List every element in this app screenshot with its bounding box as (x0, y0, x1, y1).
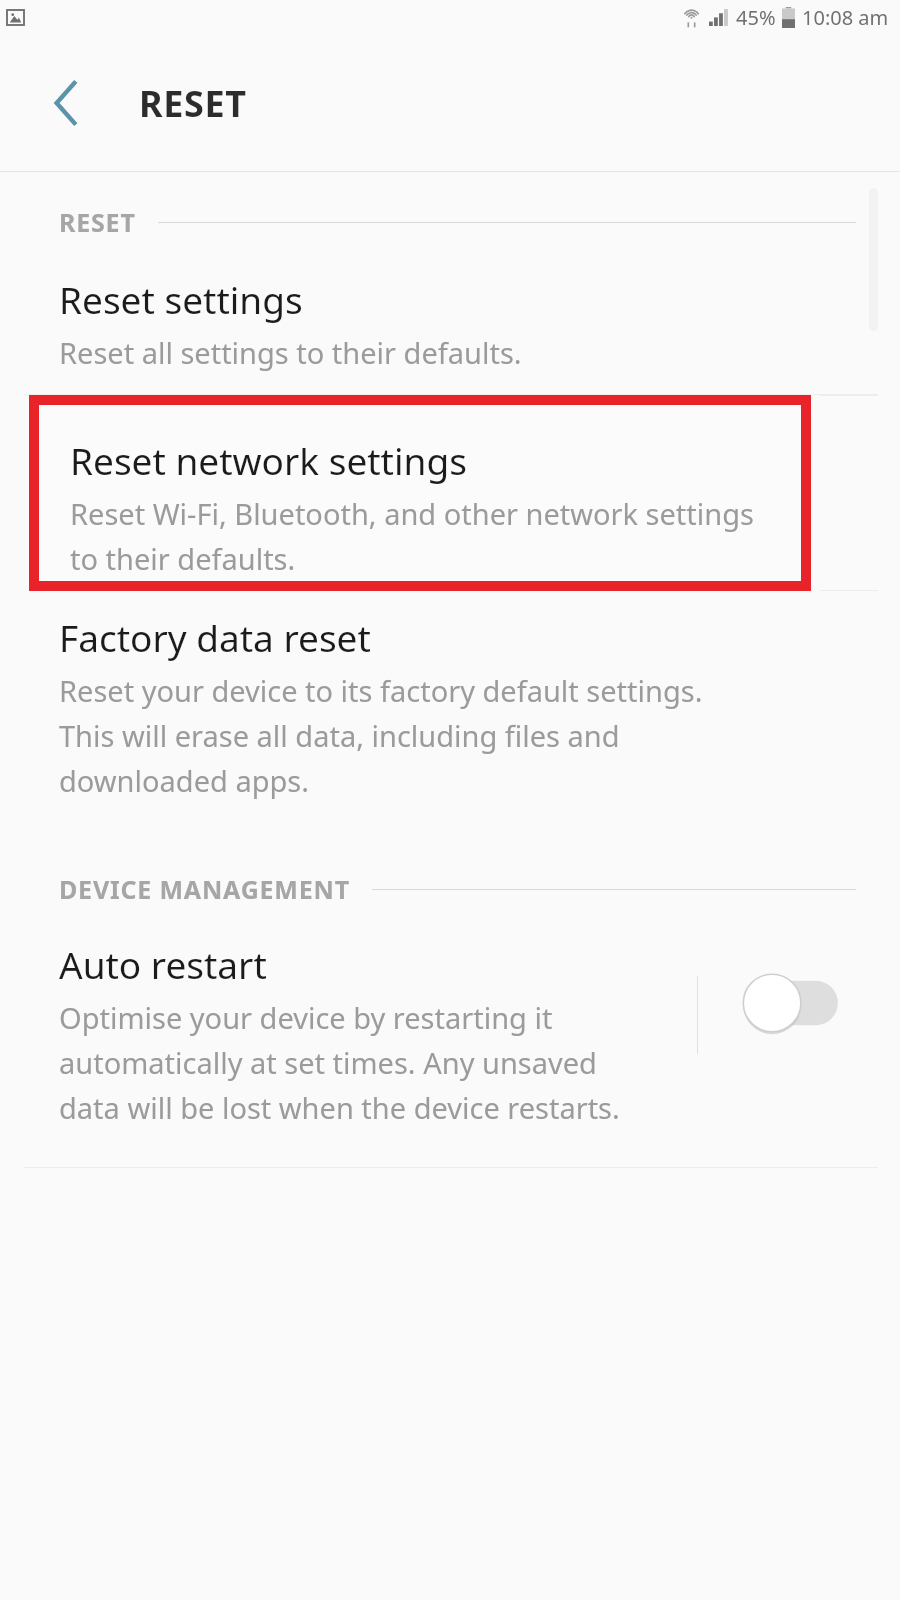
staticText: Reset your device to its factory default… (59, 671, 703, 710)
button[interactable]: Factory data reset (0, 591, 900, 824)
staticText: Optimise your device by restarting it (59, 998, 553, 1037)
staticText: 45% (736, 4, 776, 31)
button[interactable]: Reset network settings (39, 405, 801, 581)
staticText: Reset network settings (70, 435, 467, 485)
staticText: automatically at set times. Any unsaved (59, 1043, 597, 1082)
staticText: DEVICE MANAGEMENT (59, 872, 350, 906)
staticText: downloaded apps. (59, 761, 309, 800)
staticText: Factory data reset (59, 612, 371, 662)
staticText: This will erase all data, including file… (59, 716, 620, 755)
staticText: 10:08 am (802, 4, 889, 31)
staticText: RESET (139, 79, 247, 128)
staticText: to their defaults. (70, 539, 296, 578)
staticText: Reset settings (59, 274, 303, 324)
button[interactable]: Back (34, 71, 98, 135)
button[interactable]: Auto restart (0, 939, 900, 1127)
staticText: data will be lost when the device restar… (59, 1088, 620, 1127)
staticText: Reset all settings to their defaults. (59, 333, 522, 372)
button[interactable]: Reset settings (0, 274, 900, 394)
staticText: Auto restart (59, 939, 267, 989)
staticText: Reset Wi-Fi, Bluetooth, and other networ… (70, 494, 754, 533)
button[interactable]: Auto restart toggle (736, 967, 840, 1039)
staticText: RESET (59, 205, 136, 239)
